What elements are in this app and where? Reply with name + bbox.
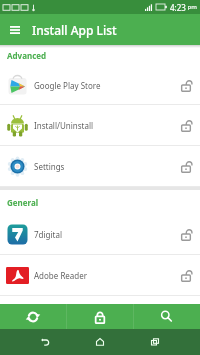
button[interactable]: Install/Uninstall xyxy=(0,105,200,145)
other: Unlocked xyxy=(179,159,193,173)
staticText: 4:23 xyxy=(170,2,186,13)
button[interactable]: Home xyxy=(72,329,128,355)
button[interactable]: Recents xyxy=(128,329,200,355)
other: Unlocked xyxy=(179,227,193,241)
staticText: 7digital xyxy=(34,229,62,240)
staticText: General xyxy=(7,197,39,208)
staticText: Adobe Reader xyxy=(34,270,88,281)
button[interactable]: Lock xyxy=(66,304,133,329)
button[interactable]: Refresh xyxy=(0,304,66,329)
button[interactable]: Back xyxy=(0,329,72,355)
button[interactable]: Settings xyxy=(0,146,200,186)
other: Unlocked xyxy=(179,268,193,282)
button[interactable]: Menu xyxy=(0,15,30,45)
button[interactable]: Adobe Reader xyxy=(0,255,200,295)
button[interactable]: Google Play Store xyxy=(0,66,200,104)
staticText: Google Play Store xyxy=(34,80,101,91)
other: Unlocked xyxy=(179,78,193,92)
button[interactable]: Search xyxy=(133,304,200,329)
button[interactable]: 7digital xyxy=(0,214,200,254)
other: Unlocked xyxy=(179,118,193,132)
staticText: Install/Uninstall xyxy=(34,120,94,131)
staticText: Install App List xyxy=(32,22,117,38)
staticText: Advanced xyxy=(7,50,47,61)
staticText: Settings xyxy=(34,161,65,172)
staticText: pm xyxy=(186,3,197,11)
